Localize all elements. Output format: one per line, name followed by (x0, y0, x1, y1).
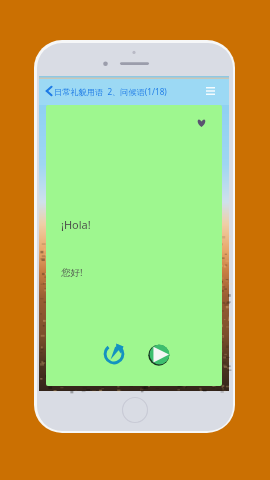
staticText: ¡Hola! (61, 217, 91, 232)
button[interactable]: Back (43, 80, 54, 102)
button[interactable]: Menu (202, 83, 218, 99)
staticText: 日常礼貌用语 2、问候语(1/18) (54, 86, 167, 97)
button[interactable]: Favorite (194, 116, 208, 130)
button[interactable]: Play (149, 344, 170, 365)
staticText: 您好! (61, 266, 83, 279)
button[interactable]: Replay (101, 341, 127, 367)
